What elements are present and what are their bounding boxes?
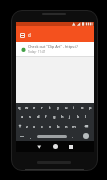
staticText: r bbox=[41, 105, 43, 110]
button[interactable]: t bbox=[46, 103, 54, 112]
staticText: . bbox=[72, 134, 73, 139]
button[interactable]: c bbox=[38, 121, 46, 131]
staticText: g bbox=[53, 114, 56, 119]
staticText: b bbox=[57, 124, 60, 129]
button[interactable]: j bbox=[66, 112, 74, 121]
button[interactable]: p bbox=[86, 103, 94, 112]
button[interactable]: d bbox=[34, 112, 42, 121]
staticText: d bbox=[37, 114, 40, 119]
button[interactable] bbox=[20, 33, 25, 38]
staticText: p bbox=[89, 105, 92, 110]
staticText: j bbox=[69, 114, 71, 119]
button[interactable]: n bbox=[62, 121, 70, 131]
button[interactable]: o bbox=[78, 103, 86, 112]
staticText: u bbox=[65, 105, 68, 110]
staticText: v bbox=[49, 124, 52, 129]
staticText: Today · 11:47 bbox=[28, 50, 46, 54]
button[interactable]: u bbox=[62, 103, 70, 112]
button[interactable] bbox=[51, 142, 60, 151]
staticText: l bbox=[85, 114, 87, 119]
button[interactable]: f bbox=[42, 112, 50, 121]
button[interactable] bbox=[34, 142, 43, 151]
button[interactable]: h bbox=[58, 112, 66, 121]
button[interactable]: g bbox=[50, 112, 58, 121]
button[interactable]: , bbox=[27, 132, 34, 140]
button[interactable]: y bbox=[54, 103, 62, 112]
button[interactable]: m bbox=[70, 121, 78, 131]
staticText: , bbox=[30, 134, 31, 139]
staticText: Check out "Clip Art" - https://play.goog… bbox=[28, 44, 94, 49]
button[interactable]: q bbox=[16, 103, 23, 112]
button[interactable]: z bbox=[23, 121, 30, 131]
staticText: x bbox=[33, 124, 36, 129]
staticText: w bbox=[25, 105, 29, 110]
button[interactable] bbox=[78, 121, 94, 131]
button[interactable]: k bbox=[74, 112, 82, 121]
staticText: h bbox=[61, 114, 64, 119]
staticText: c bbox=[41, 124, 43, 129]
button[interactable] bbox=[37, 132, 67, 140]
button[interactable]: v bbox=[46, 121, 54, 131]
button[interactable]: e bbox=[30, 103, 38, 112]
staticText: z bbox=[26, 124, 28, 129]
button[interactable] bbox=[16, 121, 23, 131]
button[interactable]: s bbox=[26, 112, 34, 121]
staticText: s bbox=[29, 114, 31, 119]
button[interactable]: i bbox=[70, 103, 78, 112]
staticText: e bbox=[33, 105, 36, 110]
staticText: i bbox=[73, 105, 75, 110]
button[interactable] bbox=[80, 132, 92, 140]
staticText: m bbox=[72, 124, 76, 129]
staticText: o bbox=[81, 105, 84, 110]
button[interactable]: r bbox=[38, 103, 46, 112]
button[interactable] bbox=[18, 132, 25, 140]
button[interactable]: x bbox=[30, 121, 38, 131]
staticText: a bbox=[21, 114, 24, 119]
button[interactable]: l bbox=[82, 112, 90, 121]
staticText: d bbox=[28, 32, 31, 38]
button[interactable]: w bbox=[23, 103, 30, 112]
button[interactable]: . bbox=[69, 132, 76, 140]
staticText: f bbox=[45, 114, 47, 119]
button[interactable] bbox=[66, 142, 75, 151]
staticText: k bbox=[77, 114, 80, 119]
button[interactable]: Check out "Clip Art" - https://play.goog… bbox=[16, 42, 94, 56]
staticText: t bbox=[49, 105, 51, 110]
button[interactable]: a bbox=[19, 112, 26, 121]
staticText: q bbox=[18, 105, 21, 110]
staticText: y bbox=[57, 105, 60, 110]
staticText: n bbox=[65, 124, 68, 129]
button[interactable]: b bbox=[54, 121, 62, 131]
